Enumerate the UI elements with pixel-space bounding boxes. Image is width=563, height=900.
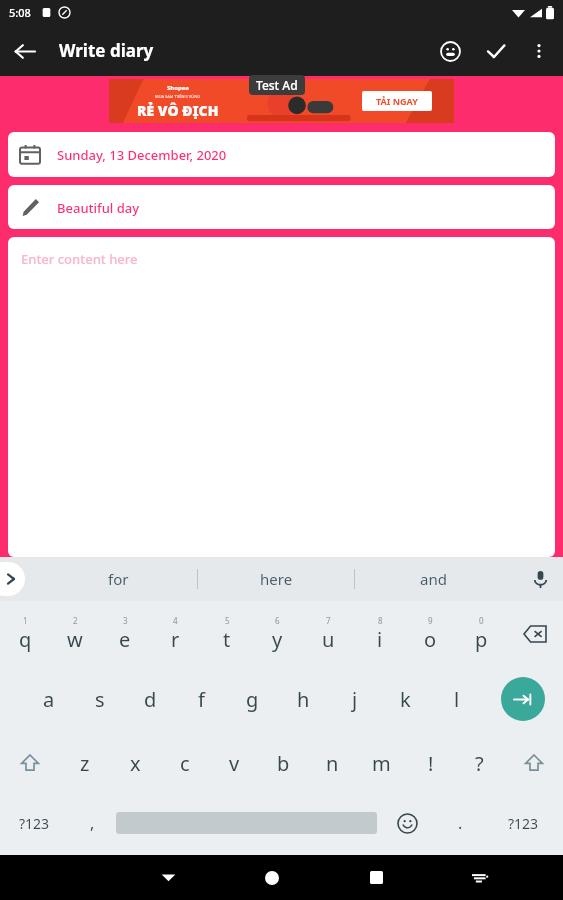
- button[interactable]: x: [110, 731, 160, 795]
- button[interactable]: Switch keyboard: [428, 855, 532, 900]
- button[interactable]: ?123: [0, 795, 69, 851]
- staticText: z: [80, 750, 90, 777]
- staticText: a: [43, 686, 55, 713]
- button[interactable]: Space: [116, 795, 377, 851]
- button[interactable]: Back: [0, 27, 48, 75]
- staticText: Beautiful day: [57, 199, 140, 217]
- staticText: 5: [225, 615, 230, 626]
- staticText: ?: [475, 750, 484, 777]
- button[interactable]: Mood: [427, 28, 473, 74]
- button[interactable]: z: [60, 731, 110, 795]
- button[interactable]: Recent apps: [324, 855, 428, 900]
- button[interactable]: ,: [69, 795, 116, 851]
- staticText: RẺ VÔ ĐỊCH: [137, 101, 219, 120]
- staticText: o: [424, 626, 437, 653]
- staticText: 2: [73, 615, 78, 626]
- button[interactable]: d: [125, 667, 176, 731]
- button[interactable]: !: [406, 731, 455, 795]
- button[interactable]: ?123: [484, 795, 563, 851]
- staticText: 3: [123, 615, 128, 626]
- staticText: k: [400, 686, 411, 713]
- button[interactable]: l: [431, 667, 482, 731]
- button[interactable]: v: [210, 731, 259, 795]
- staticText: q: [19, 626, 32, 653]
- button[interactable]: .: [437, 795, 484, 851]
- button[interactable]: Save: [473, 28, 519, 74]
- button[interactable]: Enter content here: [8, 237, 555, 557]
- staticText: e: [119, 626, 131, 653]
- button[interactable]: and: [355, 557, 511, 601]
- button[interactable]: More options: [519, 31, 559, 71]
- button[interactable]: n: [308, 731, 357, 795]
- button[interactable]: 0: [456, 601, 507, 667]
- staticText: f: [198, 686, 205, 713]
- button[interactable]: Enter: [482, 667, 563, 731]
- staticText: i: [377, 626, 383, 653]
- staticText: v: [229, 750, 240, 777]
- staticText: l: [454, 686, 460, 713]
- staticText: 4: [173, 615, 178, 626]
- button[interactable]: h: [278, 667, 329, 731]
- button[interactable]: c: [160, 731, 210, 795]
- button[interactable]: s: [74, 667, 125, 731]
- staticText: s: [95, 686, 105, 713]
- button[interactable]: k: [380, 667, 431, 731]
- button[interactable]: 9: [405, 601, 456, 667]
- staticText: 1: [23, 615, 28, 626]
- button[interactable]: 4: [150, 601, 201, 667]
- button[interactable]: Advertisement: [109, 79, 454, 123]
- button[interactable]: m: [357, 731, 406, 795]
- button[interactable]: 7: [303, 601, 354, 667]
- staticText: Shopee: [167, 84, 189, 92]
- staticText: r: [171, 626, 180, 653]
- button[interactable]: 5: [201, 601, 252, 667]
- staticText: TẢI NGAY: [376, 95, 418, 107]
- staticText: .: [458, 812, 463, 834]
- button[interactable]: g: [227, 667, 278, 731]
- staticText: u: [322, 626, 335, 653]
- button[interactable]: Home: [220, 855, 324, 900]
- staticText: 9: [428, 615, 433, 626]
- button[interactable]: Expand toolbar: [0, 562, 25, 596]
- button[interactable]: ?: [455, 731, 504, 795]
- staticText: Test Ad: [256, 77, 298, 93]
- staticText: c: [180, 750, 190, 777]
- staticText: 7: [326, 615, 331, 626]
- button[interactable]: Sunday, 13 December, 2020: [8, 132, 555, 177]
- staticText: 5:08: [9, 5, 31, 20]
- button[interactable]: here: [198, 557, 354, 601]
- button[interactable]: 3: [100, 601, 150, 667]
- staticText: MUA SẮM TRÊN 5 VÙNG: [155, 94, 201, 99]
- button[interactable]: Backspace: [507, 601, 563, 667]
- staticText: h: [297, 686, 310, 713]
- button[interactable]: 2: [50, 601, 100, 667]
- staticText: p: [475, 626, 488, 653]
- button[interactable]: b: [259, 731, 308, 795]
- button[interactable]: Shift: [0, 731, 60, 795]
- button[interactable]: Hide keyboard: [116, 855, 220, 900]
- button[interactable]: Beautiful day: [8, 185, 555, 229]
- staticText: d: [144, 686, 157, 713]
- staticText: w: [67, 626, 83, 653]
- staticText: 8: [378, 615, 383, 626]
- staticText: x: [130, 750, 141, 777]
- staticText: Write diary: [59, 39, 154, 62]
- staticText: n: [326, 750, 339, 777]
- button[interactable]: 6: [252, 601, 303, 667]
- button[interactable]: 8: [354, 601, 405, 667]
- button[interactable]: j: [329, 667, 380, 731]
- button[interactable]: Voice input: [517, 557, 563, 601]
- button[interactable]: a: [24, 667, 74, 731]
- staticText: 6: [275, 615, 280, 626]
- staticText: ?123: [19, 814, 50, 833]
- staticText: g: [246, 686, 259, 713]
- staticText: Enter content here: [21, 250, 138, 268]
- button[interactable]: Shift: [504, 731, 563, 795]
- button[interactable]: 1: [0, 601, 50, 667]
- button[interactable]: Emoji: [377, 795, 437, 851]
- staticText: and: [420, 569, 447, 589]
- button[interactable]: f: [176, 667, 227, 731]
- staticText: !: [428, 750, 434, 777]
- staticText: ?123: [508, 814, 539, 833]
- button[interactable]: for: [40, 557, 197, 601]
